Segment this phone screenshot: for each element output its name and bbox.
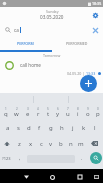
staticText: u bbox=[66, 110, 70, 118]
button[interactable]: x bbox=[25, 136, 36, 151]
staticText: a bbox=[6, 124, 10, 132]
button[interactable]: Settings bbox=[90, 10, 100, 20]
button[interactable]: Recent apps bbox=[74, 171, 86, 183]
staticText: 9 bbox=[87, 107, 89, 111]
button[interactable]: Clear text bbox=[90, 25, 100, 35]
button[interactable]: g bbox=[45, 121, 56, 136]
button[interactable]: a bbox=[3, 121, 13, 136]
staticText: q bbox=[4, 110, 8, 118]
button[interactable]: PERFORMED bbox=[51, 36, 103, 50]
staticText: y bbox=[56, 110, 60, 118]
staticText: Sunday bbox=[46, 9, 59, 14]
staticText: c bbox=[40, 140, 43, 148]
button[interactable]: PERFORM bbox=[0, 36, 51, 50]
staticText: Tomorrow bbox=[43, 53, 61, 58]
staticText: d bbox=[27, 124, 31, 132]
button[interactable]: 2 bbox=[11, 106, 22, 121]
staticText: b bbox=[59, 140, 63, 148]
staticText: 7 bbox=[67, 107, 69, 111]
button[interactable]: 9 bbox=[83, 106, 93, 121]
button[interactable]: 5 bbox=[43, 106, 53, 121]
staticText: . bbox=[81, 155, 83, 162]
other: Search bbox=[3, 25, 12, 34]
button[interactable]: 1 bbox=[0, 106, 11, 121]
button[interactable]: h bbox=[56, 121, 67, 136]
button[interactable]: j bbox=[67, 121, 78, 136]
staticText: 3 bbox=[27, 107, 29, 111]
button[interactable]: 6 bbox=[53, 106, 63, 121]
staticText: PERFORM bbox=[17, 41, 34, 46]
button[interactable]: 3 bbox=[22, 106, 33, 121]
staticText: s bbox=[17, 124, 20, 132]
staticText: k bbox=[82, 124, 86, 132]
staticText: f bbox=[38, 124, 41, 132]
staticText: 03.05.2020 bbox=[40, 14, 64, 20]
button[interactable]: z bbox=[14, 136, 25, 151]
staticText: r bbox=[37, 110, 40, 118]
staticText: t bbox=[47, 110, 50, 118]
button[interactable]: k bbox=[78, 121, 89, 136]
button[interactable]: . bbox=[75, 151, 89, 166]
button[interactable]: Search bbox=[90, 152, 102, 164]
staticText: 8 bbox=[77, 107, 79, 111]
staticText: i bbox=[77, 110, 79, 118]
staticText: 18:35 bbox=[92, 1, 102, 6]
staticText: j bbox=[72, 124, 74, 132]
button[interactable]: Back bbox=[20, 171, 32, 183]
staticText: x bbox=[29, 140, 33, 148]
button[interactable]: Home bbox=[46, 171, 58, 183]
button[interactable]: Shift bbox=[0, 136, 14, 151]
staticText: 2 bbox=[16, 107, 18, 111]
staticText: p bbox=[96, 110, 100, 118]
button[interactable]: c bbox=[36, 136, 46, 151]
staticText: n bbox=[69, 140, 73, 148]
button[interactable]: 8 bbox=[73, 106, 83, 121]
staticText: o bbox=[86, 110, 90, 118]
button[interactable]: v bbox=[46, 136, 56, 151]
staticText: call home bbox=[20, 62, 41, 68]
button[interactable]: Add task bbox=[80, 75, 97, 92]
button[interactable]: ?123 bbox=[0, 151, 13, 166]
staticText: l bbox=[94, 124, 96, 132]
staticText: 4 bbox=[37, 107, 39, 111]
button[interactable]: Backspace bbox=[86, 136, 103, 151]
staticText: 5 bbox=[47, 107, 49, 111]
button[interactable]: 4 bbox=[33, 106, 43, 121]
staticText: v bbox=[49, 140, 53, 148]
button[interactable]: 7 bbox=[63, 106, 73, 121]
button[interactable]: 0 bbox=[93, 106, 103, 121]
staticText: h bbox=[60, 124, 64, 132]
staticText: z bbox=[18, 140, 21, 148]
button[interactable]: n bbox=[66, 136, 76, 151]
button[interactable]: , bbox=[13, 151, 27, 166]
staticText: m bbox=[78, 140, 84, 148]
button[interactable]: s bbox=[13, 121, 23, 136]
staticText: 0 bbox=[97, 107, 99, 111]
staticText: 04.05.20 | bbox=[67, 71, 86, 76]
staticText: ca bbox=[14, 27, 19, 33]
staticText: PERFORMED bbox=[66, 41, 88, 46]
staticText: 13:33 bbox=[86, 71, 96, 76]
staticText: e bbox=[26, 110, 30, 118]
button[interactable]: l bbox=[89, 121, 100, 136]
button[interactable]: call home bbox=[0, 59, 103, 76]
button[interactable]: d bbox=[23, 121, 34, 136]
button[interactable]: m bbox=[76, 136, 86, 151]
staticText: , bbox=[19, 155, 21, 162]
staticText: ?123 bbox=[2, 156, 11, 161]
button[interactable]: b bbox=[56, 136, 66, 151]
staticText: 6 bbox=[57, 107, 59, 111]
staticText: w bbox=[14, 110, 19, 118]
staticText: g bbox=[49, 124, 53, 132]
staticText: 1 bbox=[5, 107, 7, 111]
button[interactable]: f bbox=[34, 121, 45, 136]
button[interactable]: Switch keyboard bbox=[91, 172, 101, 182]
